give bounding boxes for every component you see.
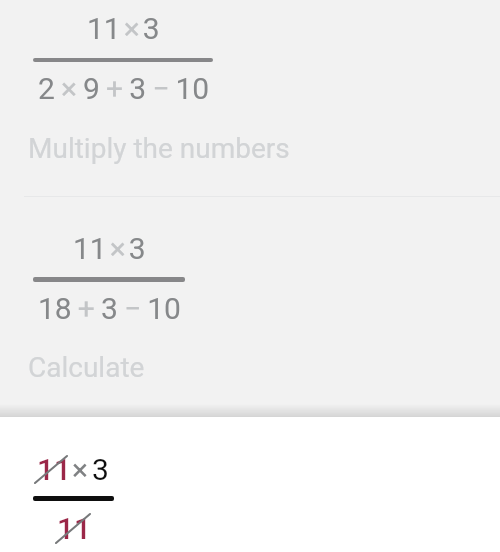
staticText: 11 × 3 xyxy=(87,11,160,46)
staticText: 2 × 9 + 3 − 10 xyxy=(38,71,210,106)
staticText: 11 × 3 xyxy=(73,231,146,266)
staticText: 11 xyxy=(57,511,92,546)
staticText: Multiply the numbers xyxy=(28,132,290,165)
button[interactable]: Step: multiply the numbers xyxy=(0,0,500,196)
staticText: Calculate xyxy=(28,351,145,384)
button[interactable]: Step: calculate xyxy=(0,197,500,405)
staticText: 3 xyxy=(92,452,109,487)
staticText: 11 xyxy=(37,452,72,487)
button[interactable]: Current step: cancel the common factor xyxy=(0,417,500,552)
staticText: × xyxy=(72,452,89,487)
staticText: 18 + 3 − 10 xyxy=(38,291,181,326)
